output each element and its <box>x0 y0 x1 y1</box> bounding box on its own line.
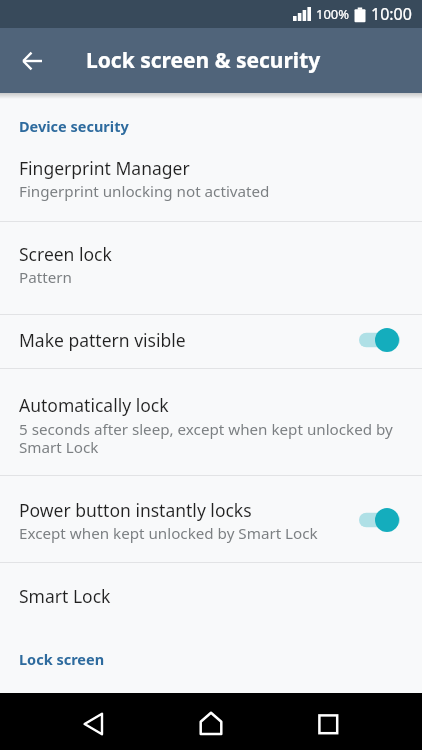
button[interactable] <box>310 706 346 742</box>
staticText: Make pattern visible <box>19 328 186 352</box>
staticText: 10:00 <box>371 3 412 25</box>
staticText: Pattern <box>19 267 72 288</box>
button[interactable] <box>21 49 45 73</box>
button[interactable] <box>0 314 422 368</box>
button[interactable] <box>0 221 422 315</box>
button[interactable] <box>75 706 111 742</box>
button[interactable] <box>193 706 229 742</box>
button[interactable] <box>0 135 422 221</box>
staticText: Automatically lock <box>19 393 169 417</box>
staticText: 100% <box>316 5 350 23</box>
button[interactable] <box>0 562 422 628</box>
staticText: Screen lock <box>19 242 112 266</box>
staticText: Lock screen & security <box>86 46 321 75</box>
staticText: Device security <box>19 116 129 136</box>
button[interactable] <box>0 475 422 562</box>
button[interactable] <box>0 368 422 476</box>
staticText: 5 seconds after sleep, except when kept … <box>19 419 393 440</box>
staticText: Lock screen <box>19 649 105 669</box>
staticText: Fingerprint unlocking not activated <box>19 181 270 202</box>
staticText: Fingerprint Manager <box>19 156 190 180</box>
staticText: Power button instantly locks <box>19 498 252 522</box>
staticText: Smart Lock <box>19 584 111 608</box>
staticText: Except when kept unlocked by Smart Lock <box>19 523 318 544</box>
staticText: Smart Lock <box>19 437 99 458</box>
